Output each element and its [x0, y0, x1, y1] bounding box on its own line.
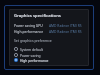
button[interactable]: High performance [14, 58, 84, 62]
staticText: High performance [20, 58, 49, 62]
staticText: Power saving GPU [14, 23, 43, 27]
staticText: High-performance GPU [14, 29, 47, 33]
button[interactable]: Power saving [14, 52, 84, 58]
staticText: Power saving [20, 53, 41, 57]
staticText: AMD Radeon (TM) R5 (M3 1… [49, 29, 84, 33]
staticText: System default [20, 47, 44, 51]
button[interactable]: System default [14, 46, 84, 52]
staticText: AMD Radeon (TM) R5 (M3 1… [49, 23, 84, 27]
staticText: Set graphics preference [14, 38, 52, 43]
staticText: Graphics specifications [14, 13, 61, 19]
